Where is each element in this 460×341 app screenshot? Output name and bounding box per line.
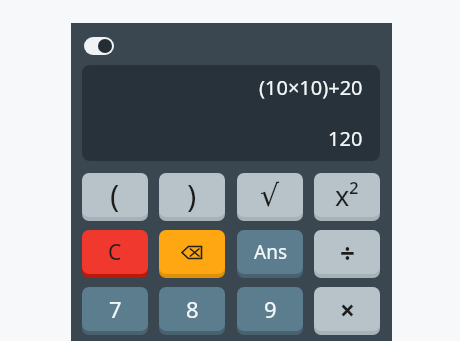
staticText: √ <box>260 178 280 213</box>
staticText: 9 <box>264 294 277 324</box>
staticText: Ans <box>254 239 287 265</box>
staticText: ÷ <box>340 235 355 270</box>
staticText: 7 <box>109 294 122 324</box>
staticText: x² <box>335 177 359 214</box>
button[interactable]: x² <box>314 173 380 217</box>
button[interactable]: √ <box>237 173 303 217</box>
button[interactable]: ÷ <box>314 230 380 274</box>
staticText: 8 <box>186 294 199 324</box>
staticText: (10×10)+20 <box>259 74 363 101</box>
button[interactable]: 8 <box>159 287 225 331</box>
button[interactable]: ) <box>159 173 225 217</box>
button[interactable] <box>159 230 225 274</box>
button[interactable] <box>84 37 114 55</box>
staticText: ) <box>187 174 197 216</box>
button[interactable]: C <box>82 230 148 274</box>
staticText: 120 <box>328 125 363 152</box>
button[interactable]: × <box>314 287 380 331</box>
staticText: × <box>340 292 355 327</box>
button[interactable]: ( <box>82 173 148 217</box>
button[interactable]: 9 <box>237 287 303 331</box>
staticText: ( <box>110 174 120 216</box>
button[interactable]: 7 <box>82 287 148 331</box>
staticText: C <box>108 238 122 267</box>
button[interactable]: Ans <box>237 230 303 274</box>
